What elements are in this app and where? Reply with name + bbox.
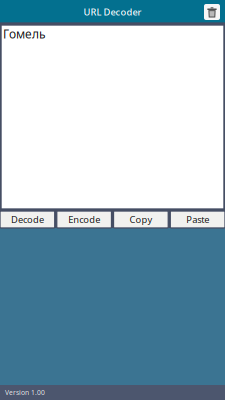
button[interactable]: Clear text xyxy=(204,4,220,20)
button[interactable]: Encode xyxy=(57,211,112,228)
staticText: Version 1.00 xyxy=(5,388,45,397)
button[interactable]: Paste xyxy=(170,211,225,228)
staticText: Гомель xyxy=(3,26,46,42)
staticText: Paste xyxy=(186,213,209,226)
button[interactable]: Decode xyxy=(0,211,55,228)
staticText: Copy xyxy=(129,213,152,226)
staticText: Decode xyxy=(11,213,44,226)
staticText: Encode xyxy=(68,213,100,226)
button[interactable]: Гомель xyxy=(0,24,225,210)
staticText: URL Decoder xyxy=(83,6,141,18)
button[interactable]: Copy xyxy=(113,211,168,228)
